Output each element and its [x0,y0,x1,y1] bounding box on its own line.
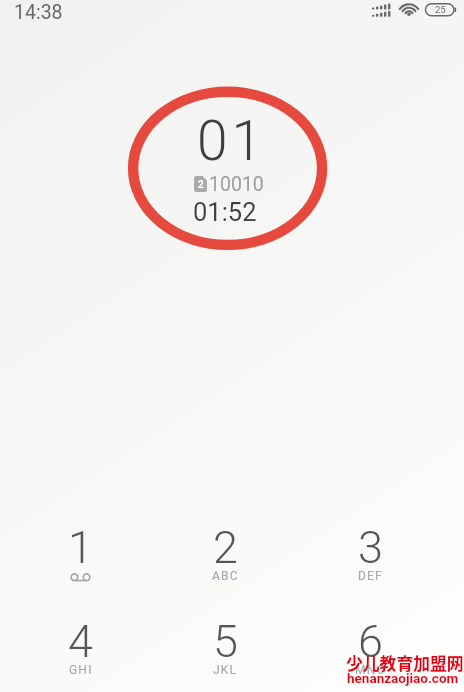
staticText: 4 [68,615,93,668]
staticText: 1 [68,521,93,574]
staticText: 6 [358,615,383,668]
staticText: 3 [358,521,383,574]
button[interactable]: 2 [153,521,298,613]
staticText: 01 [197,109,267,173]
button[interactable]: 1 [8,521,153,613]
staticText: 5 [213,615,238,668]
button[interactable]: 3 [298,521,443,613]
button[interactable]: 5 [153,615,298,692]
staticText: 少儿教育加盟网 [346,651,464,675]
staticText: MNO [355,663,386,677]
staticText: 14:38 [14,1,63,24]
button[interactable]: 6 [298,615,443,692]
staticText: 2 [198,179,204,191]
button[interactable]: 4 [8,615,153,692]
staticText: 25 [435,4,446,15]
staticText: DEF [358,569,383,583]
staticText: 2 [213,521,238,574]
staticText: 10010 [209,173,264,196]
staticText: ABC [212,569,239,583]
staticText: GHI [69,663,93,677]
staticText: 01:52 [193,197,257,227]
staticText: JKL [213,663,238,677]
staticText: henanzaojiao.com [347,670,459,686]
